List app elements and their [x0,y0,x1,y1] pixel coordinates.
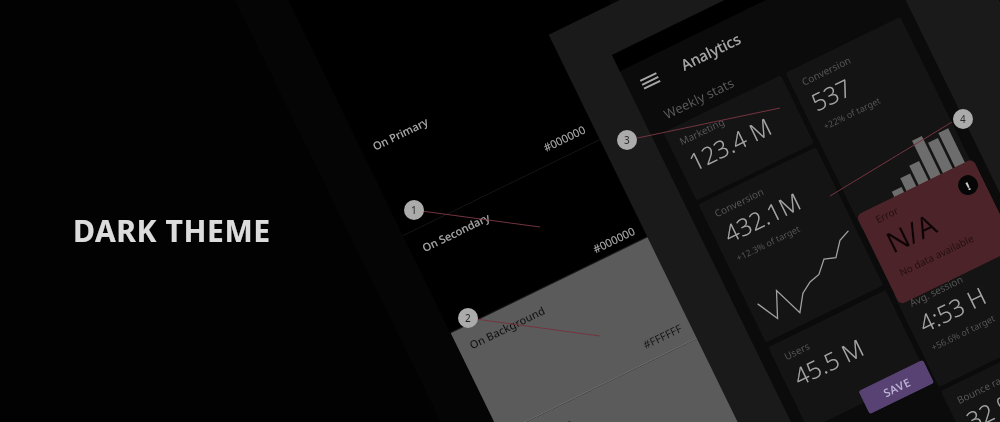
staticText: Conversion [712,184,766,220]
button[interactable]: 2 [458,308,478,328]
button[interactable]: 3 [617,130,637,150]
staticText: #FFFFFF [640,320,685,352]
button[interactable]: Marketing [663,75,814,201]
staticText: +56.6% of target [929,311,997,353]
staticText: +12.3% of target [734,222,802,263]
staticText: On Surface [516,415,575,422]
button[interactable]: Error [856,158,1000,305]
staticText: Analytics [677,28,744,74]
button[interactable]: On Surface [500,308,809,422]
button[interactable]: 1 [404,200,424,220]
staticText: +22% of target [821,94,882,132]
staticText: #000000 [541,121,588,155]
staticText: Bounce rate [954,369,1000,407]
staticText: 123.4 M [683,110,777,178]
staticText: Conversion [799,53,853,89]
staticText: Avg. session [907,272,965,310]
staticText: 45.5 M [788,330,870,393]
staticText: On Primary [370,114,430,153]
staticText: 1 [411,203,417,217]
staticText: 4:53 H [913,279,991,339]
button[interactable]: On Secondary [403,110,710,333]
staticText: Weekly stats [661,74,737,123]
staticText: 2 [465,311,471,325]
staticText: On Background [467,302,548,352]
button[interactable]: Conversion [785,17,978,231]
button[interactable]: Open navigation menu [638,69,662,93]
staticText: ! [963,178,973,193]
staticText: Marketing [677,114,727,148]
staticText: N/A [879,203,943,261]
button[interactable]: On Background [451,207,759,422]
staticText: 432.1M [718,184,806,250]
staticText: 3 [624,133,630,147]
button[interactable]: Avg. session [893,238,1000,387]
button[interactable]: Users [768,290,926,422]
button[interactable]: On Primary [354,8,662,236]
staticText: On Secondary [419,209,493,255]
staticText: 4 [960,112,966,126]
staticText: 537 [805,70,857,118]
button[interactable]: 4 [953,109,973,129]
button[interactable]: Alert [955,172,981,198]
staticText: No data available [897,231,976,279]
button[interactable]: SAVE [858,359,934,414]
staticText: 32 % [960,383,1000,422]
staticText: Users [782,339,812,363]
staticText: SAVE [881,374,913,400]
button[interactable]: Conversion [698,147,883,343]
staticText: #000000 [590,223,637,256]
staticText: Error [873,203,901,226]
button[interactable]: Bounce rate [940,335,1000,422]
staticText: DARK THEME [73,210,271,251]
